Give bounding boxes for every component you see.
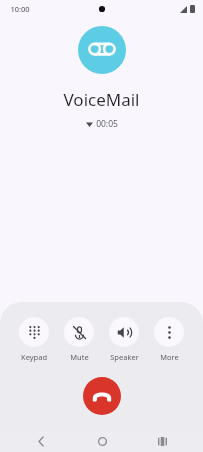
button[interactable]: Recents xyxy=(151,430,173,452)
staticText: Speaker xyxy=(110,352,139,362)
staticText: Keypad xyxy=(21,352,47,362)
button[interactable]: Back xyxy=(30,430,52,452)
button[interactable]: Home xyxy=(91,430,113,452)
staticText: Mute xyxy=(70,352,89,362)
button[interactable]: End call xyxy=(83,377,121,415)
button[interactable]: Mute xyxy=(62,316,96,363)
staticText: More xyxy=(160,352,179,362)
button[interactable]: Speaker xyxy=(107,316,141,363)
staticText: 10:00 xyxy=(10,4,30,14)
button[interactable]: Keypad xyxy=(17,316,51,363)
staticText: VoiceMail xyxy=(63,88,140,111)
staticText: 00:05 xyxy=(96,118,118,130)
button[interactable]: More xyxy=(152,316,186,363)
